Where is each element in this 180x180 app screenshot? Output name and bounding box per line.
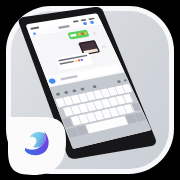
button[interactable]: Emoji keyboard app icon [0,0,180,180]
